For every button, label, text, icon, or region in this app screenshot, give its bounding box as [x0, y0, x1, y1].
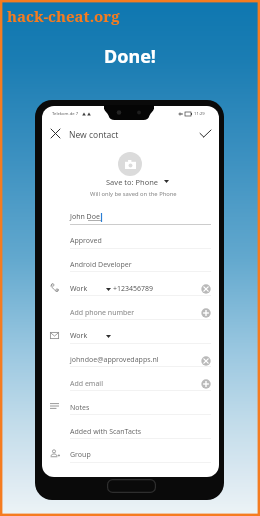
- button[interactable]: [42, 299, 220, 323]
- button[interactable]: [42, 394, 220, 418]
- button[interactable]: Add field: [198, 305, 213, 320]
- staticText: Added with ScanTacts: [70, 427, 142, 437]
- button[interactable]: Add field: [198, 376, 213, 391]
- staticText: Notes: [70, 403, 90, 413]
- staticText: Done!: [104, 44, 156, 69]
- staticText: Add phone number: [70, 308, 135, 318]
- staticText: Group: [70, 450, 91, 460]
- button[interactable]: [42, 441, 220, 465]
- staticText: Work: [70, 284, 88, 294]
- button[interactable]: [42, 251, 220, 275]
- button[interactable]: [42, 322, 220, 346]
- button[interactable]: Clear field: [198, 281, 213, 296]
- staticText: John Doe: [70, 212, 100, 222]
- button[interactable]: [42, 370, 220, 394]
- button[interactable]: [42, 203, 220, 227]
- staticText: 11:29: [194, 111, 205, 117]
- button[interactable]: Clear field: [198, 353, 213, 368]
- button[interactable]: [42, 346, 220, 370]
- staticText: Telekom.de 7: [52, 111, 79, 117]
- staticText: New contact: [69, 129, 119, 141]
- staticText: Work: [70, 331, 88, 341]
- staticText: +123456789: [113, 284, 154, 294]
- button[interactable]: [42, 418, 220, 442]
- staticText: Will only be saved on the Phone: [90, 190, 177, 198]
- button[interactable]: [42, 227, 220, 251]
- staticText: hack-cheat.org: [7, 6, 120, 26]
- staticText: Save to: Phone: [106, 177, 159, 186]
- staticText: johndoe@approvedapps.nl: [70, 355, 159, 365]
- button[interactable]: Save contact: [198, 126, 212, 140]
- staticText: Approved: [70, 236, 102, 246]
- button[interactable]: Close: [48, 126, 62, 140]
- button[interactable]: Add photo: [118, 152, 142, 176]
- button[interactable]: Save to: Phone: [106, 177, 169, 186]
- button[interactable]: [42, 275, 220, 299]
- staticText: Add email: [70, 379, 103, 389]
- staticText: Android Developer: [70, 260, 132, 270]
